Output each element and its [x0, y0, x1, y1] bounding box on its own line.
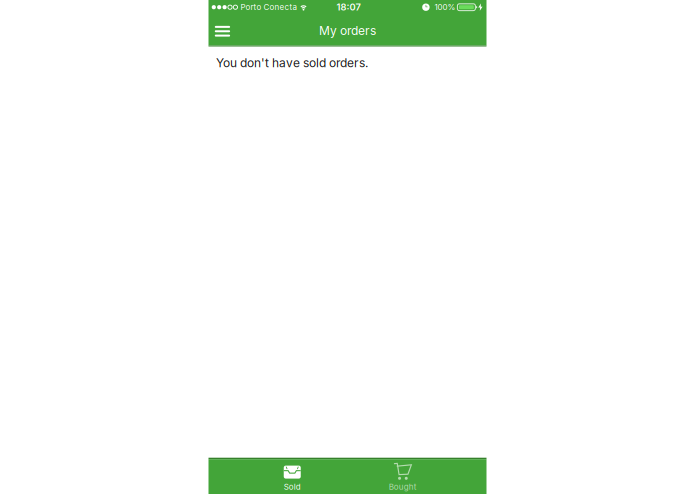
- button[interactable]: Sold: [262, 459, 322, 494]
- staticText: 18:07: [336, 2, 360, 13]
- staticText: You don't have sold orders.: [216, 56, 368, 70]
- staticText: Bought: [389, 482, 417, 492]
- staticText: 100%: [434, 2, 455, 12]
- staticText: Porto Conecta: [240, 2, 296, 12]
- button[interactable]: Menu: [208, 21, 230, 42]
- button[interactable]: Bought: [373, 459, 433, 494]
- staticText: My orders: [319, 23, 376, 38]
- staticText: Sold: [284, 482, 301, 492]
